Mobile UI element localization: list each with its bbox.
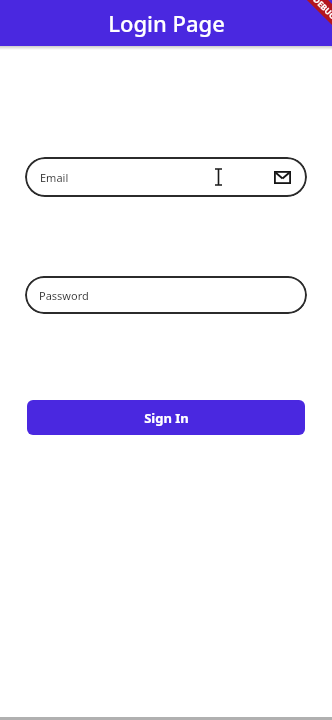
button[interactable]: Email xyxy=(25,157,307,197)
staticText: DEBUG xyxy=(311,0,332,21)
button[interactable]: Email xyxy=(271,166,293,188)
staticText: Sign In xyxy=(144,409,189,427)
staticText: Email xyxy=(40,170,69,185)
button[interactable]: Sign In xyxy=(27,400,305,435)
staticText: Password xyxy=(39,288,89,303)
staticText: Login Page xyxy=(108,8,225,38)
button[interactable]: Password xyxy=(25,276,307,314)
